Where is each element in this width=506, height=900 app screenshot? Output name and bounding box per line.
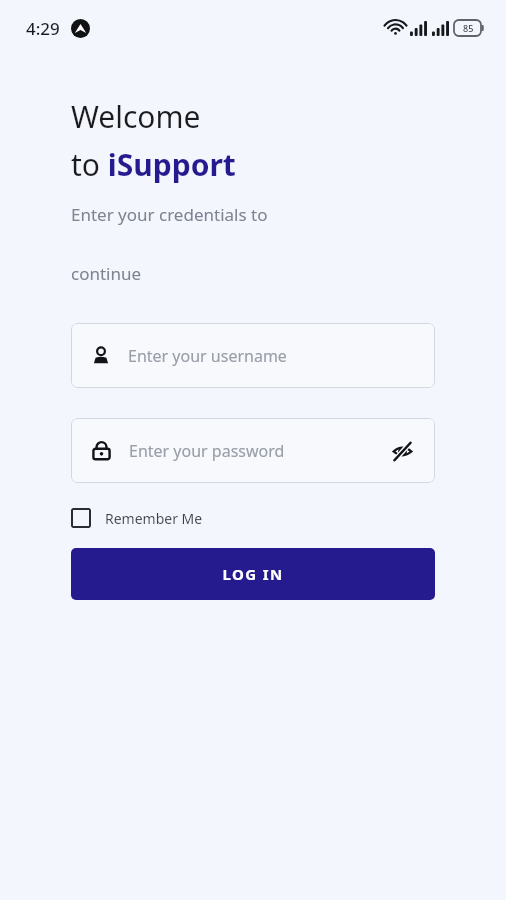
staticText: Welcome [71,96,201,137]
staticText: Enter your credentials to [71,203,268,226]
staticText: LOG IN [222,564,284,584]
button[interactable]: Enter your username [71,323,435,388]
button[interactable]: LOG IN [71,548,435,600]
staticText: to iSupport [71,144,236,185]
button[interactable]: Remember Me [69,505,205,531]
staticText: Enter your username [128,345,287,367]
staticText: 4:29 [26,17,60,40]
staticText: continue [71,262,142,285]
button[interactable]: Enter your password [71,418,435,483]
button[interactable]: Show password [387,436,417,466]
staticText: 85 [463,22,474,34]
staticText: Enter your password [129,440,285,462]
staticText: Remember Me [105,509,203,528]
